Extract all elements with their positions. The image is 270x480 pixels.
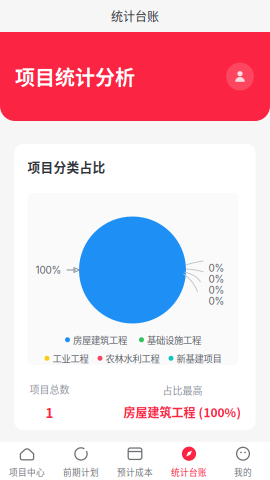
button[interactable]: 我的: [216, 442, 270, 480]
staticText: 0%: [208, 295, 224, 307]
staticText: 项目中心: [9, 466, 45, 478]
staticText: 项目总数: [29, 382, 69, 396]
staticText: 农林水利工程: [105, 351, 159, 365]
staticText: 工业工程: [52, 351, 88, 365]
staticText: 占比最高: [162, 383, 202, 397]
staticText: 0%: [208, 284, 224, 296]
staticText: 预计成本: [117, 466, 153, 478]
button[interactable]: 统计台账: [162, 442, 216, 480]
staticText: 100%: [35, 264, 61, 276]
staticText: 统计台账: [111, 7, 159, 25]
staticText: 基础设施工程: [147, 333, 201, 346]
staticText: 房屋建筑工程: [73, 333, 127, 346]
button[interactable]: Profile: [225, 61, 255, 91]
staticText: 前期计划: [63, 466, 99, 478]
staticText: 项目分类占比: [27, 157, 105, 176]
button[interactable]: 预计成本: [108, 442, 162, 480]
staticText: 0%: [208, 262, 224, 274]
button[interactable]: 前期计划: [54, 442, 108, 480]
staticText: 项目统计分析: [15, 62, 135, 91]
staticText: 房屋建筑工程 (100%): [123, 403, 241, 421]
button[interactable]: 项目中心: [0, 442, 54, 480]
staticText: 统计台账: [171, 466, 207, 478]
staticText: 0%: [208, 273, 224, 285]
staticText: 新基建项目: [176, 351, 221, 365]
staticText: 我的: [234, 466, 252, 478]
staticText: 1: [45, 402, 53, 422]
